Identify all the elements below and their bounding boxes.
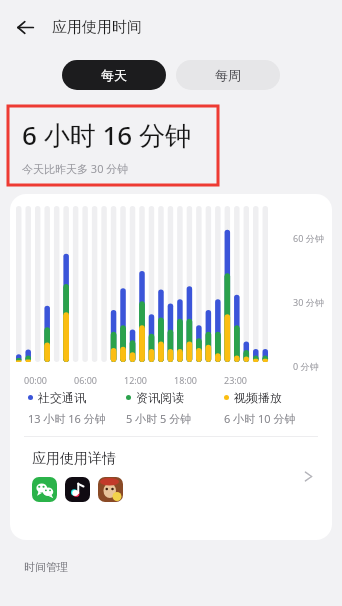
- staticText: 时间管理: [24, 560, 68, 574]
- staticText: 6 小时 10 分钟: [224, 411, 296, 426]
- staticText: 6 小时 16 分钟: [22, 117, 191, 153]
- staticText: 18:00: [174, 374, 198, 386]
- staticText: 00:00: [24, 374, 48, 386]
- staticText: 0 分钟: [293, 360, 319, 372]
- staticText: 5 小时 5 分钟: [126, 411, 192, 426]
- button[interactable]: Back: [6, 8, 44, 46]
- staticText: 06:00: [74, 374, 98, 386]
- staticText: 视频播放: [234, 390, 282, 405]
- staticText: 23:00: [224, 374, 248, 386]
- staticText: 12:00: [124, 374, 148, 386]
- button[interactable]: 每天: [62, 60, 166, 90]
- staticText: 每天: [101, 67, 127, 83]
- staticText: 应用使用详情: [32, 450, 116, 468]
- staticText: 13 小时 16 分钟: [28, 411, 106, 426]
- staticText: 60 分钟: [293, 232, 324, 244]
- staticText: 社交通讯: [38, 390, 86, 405]
- staticText: 应用使用时间: [52, 18, 142, 37]
- staticText: 每周: [215, 67, 241, 83]
- button[interactable]: 应用使用详情: [10, 437, 332, 515]
- staticText: 资讯阅读: [136, 390, 184, 405]
- button[interactable]: 每周: [176, 60, 280, 90]
- staticText: 30 分钟: [293, 296, 324, 308]
- staticText: 今天比昨天多 30 分钟: [22, 161, 129, 176]
